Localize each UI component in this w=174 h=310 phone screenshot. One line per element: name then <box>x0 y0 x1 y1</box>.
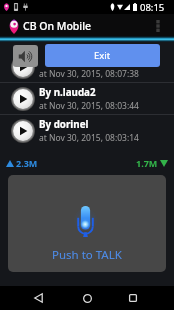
button[interactable]: By n.lauda2 <box>0 83 174 115</box>
button[interactable]: More options <box>150 14 170 38</box>
button[interactable]: at Nov 30, 2015, 08:07:38 <box>0 51 174 83</box>
staticText: Exit <box>94 49 111 62</box>
button[interactable]: By dorinel <box>0 115 174 147</box>
button[interactable]: Home <box>73 286 101 310</box>
staticText: at Nov 30, 2015, 08:03:44 <box>39 100 139 112</box>
staticText: at Nov 30, 2015, 08:03:14 <box>39 132 139 144</box>
staticText: 1.7M <box>136 157 158 169</box>
staticText: CB On Mobile <box>23 19 92 33</box>
staticText: Push to TALK <box>52 247 122 263</box>
button[interactable]: Back <box>24 286 53 310</box>
staticText: at Nov 30, 2015, 08:07:38 <box>39 68 139 80</box>
staticText: 2.3M <box>16 157 38 169</box>
staticText: By dorinel <box>39 118 89 131</box>
button[interactable]: Recents <box>119 286 147 310</box>
staticText: 08:15 <box>140 1 165 14</box>
button[interactable]: Speaker <box>13 45 38 67</box>
button[interactable]: Exit <box>45 44 160 67</box>
button[interactable]: Push to TALK <box>8 175 166 272</box>
staticText: By n.lauda2 <box>39 86 96 99</box>
